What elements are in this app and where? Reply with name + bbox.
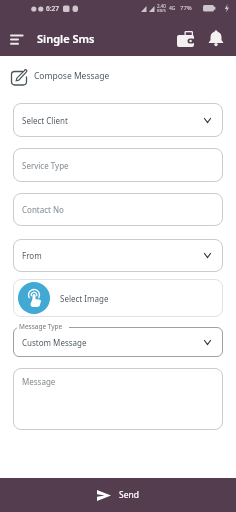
staticText: From — [22, 250, 42, 261]
button[interactable] — [2, 25, 31, 54]
staticText: Compose Message — [34, 70, 110, 82]
staticText: Message — [22, 376, 56, 387]
button[interactable]: From — [13, 239, 223, 272]
button[interactable]: Select Image — [13, 279, 223, 317]
button[interactable]: Service Type — [13, 148, 223, 182]
button[interactable]: Contact No — [13, 193, 223, 226]
button[interactable]: Compose Message — [10, 66, 110, 86]
staticText: Single Sms — [37, 31, 95, 46]
staticText: 4G — [169, 5, 176, 12]
staticText: Custom Message — [22, 337, 87, 348]
staticText: Send — [119, 489, 139, 501]
staticText: KB/S — [157, 8, 166, 13]
button[interactable] — [171, 24, 200, 53]
button[interactable]: Select Client — [13, 103, 223, 137]
staticText: 6:27 — [46, 4, 59, 13]
staticText: 77% — [180, 4, 192, 12]
button[interactable] — [201, 24, 230, 53]
button[interactable]: Send — [0, 478, 236, 512]
staticText: Message Type — [19, 322, 63, 331]
staticText: Select Client — [22, 115, 68, 126]
staticText: Contact No — [22, 204, 64, 215]
staticText: Service Type — [22, 160, 69, 171]
staticText: Select Image — [60, 293, 109, 304]
staticText: 2.40 — [157, 3, 166, 9]
button[interactable]: Custom Message — [13, 327, 223, 357]
